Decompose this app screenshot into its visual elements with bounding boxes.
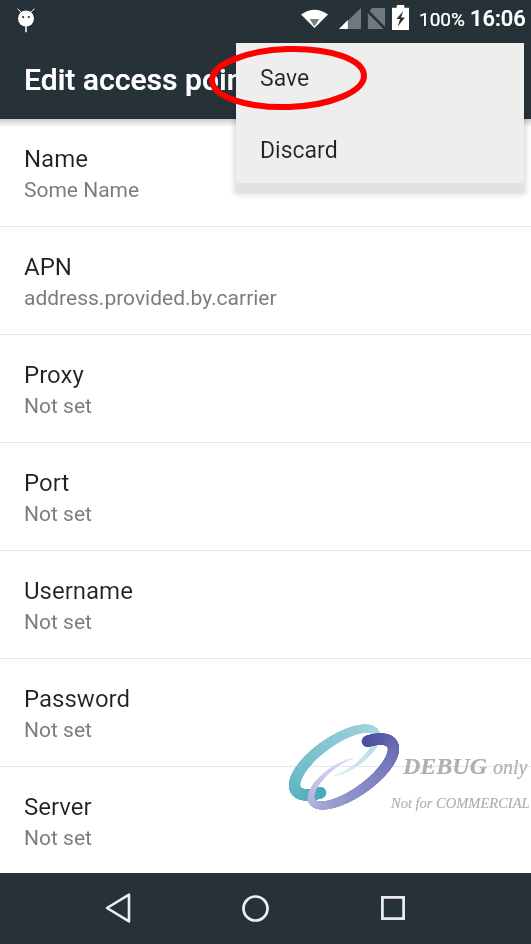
staticText: Server — [24, 793, 92, 821]
button[interactable]: Back — [92, 882, 144, 934]
staticText: Edit access point — [24, 62, 254, 97]
staticText: Username — [24, 577, 133, 605]
staticText: Not set — [24, 718, 92, 743]
staticText: 16:06 — [470, 6, 526, 32]
button[interactable]: Name — [0, 119, 531, 227]
staticText: DEBUG — [403, 753, 488, 780]
staticText: Not set — [24, 826, 92, 851]
staticText: Name — [24, 145, 88, 173]
staticText: 100% — [419, 8, 465, 30]
staticText: Password — [24, 685, 131, 713]
button[interactable]: Server — [0, 767, 531, 875]
staticText: Not set — [24, 502, 92, 527]
staticText: Not set — [24, 610, 92, 635]
staticText: Port — [24, 469, 70, 497]
button[interactable]: Recent apps — [367, 882, 419, 934]
staticText: address.provided.by.carrier — [24, 286, 277, 311]
staticText: Some Name — [24, 178, 140, 203]
staticText: Proxy — [24, 361, 84, 389]
staticText: Discard — [260, 137, 338, 164]
button[interactable]: Home — [229, 882, 281, 934]
button[interactable]: Username — [0, 551, 531, 659]
staticText: APN — [24, 253, 72, 281]
button[interactable]: Discard — [236, 113, 524, 183]
staticText: Save — [260, 65, 310, 92]
staticText: Not set — [24, 394, 92, 419]
staticText: only — [493, 756, 528, 778]
button[interactable]: Proxy — [0, 335, 531, 443]
button[interactable]: APN — [0, 227, 531, 335]
button[interactable]: Save — [236, 43, 524, 113]
staticText: Not for COMMERCIAL — [391, 795, 530, 811]
button[interactable]: Port — [0, 443, 531, 551]
button[interactable]: Password — [0, 659, 531, 767]
